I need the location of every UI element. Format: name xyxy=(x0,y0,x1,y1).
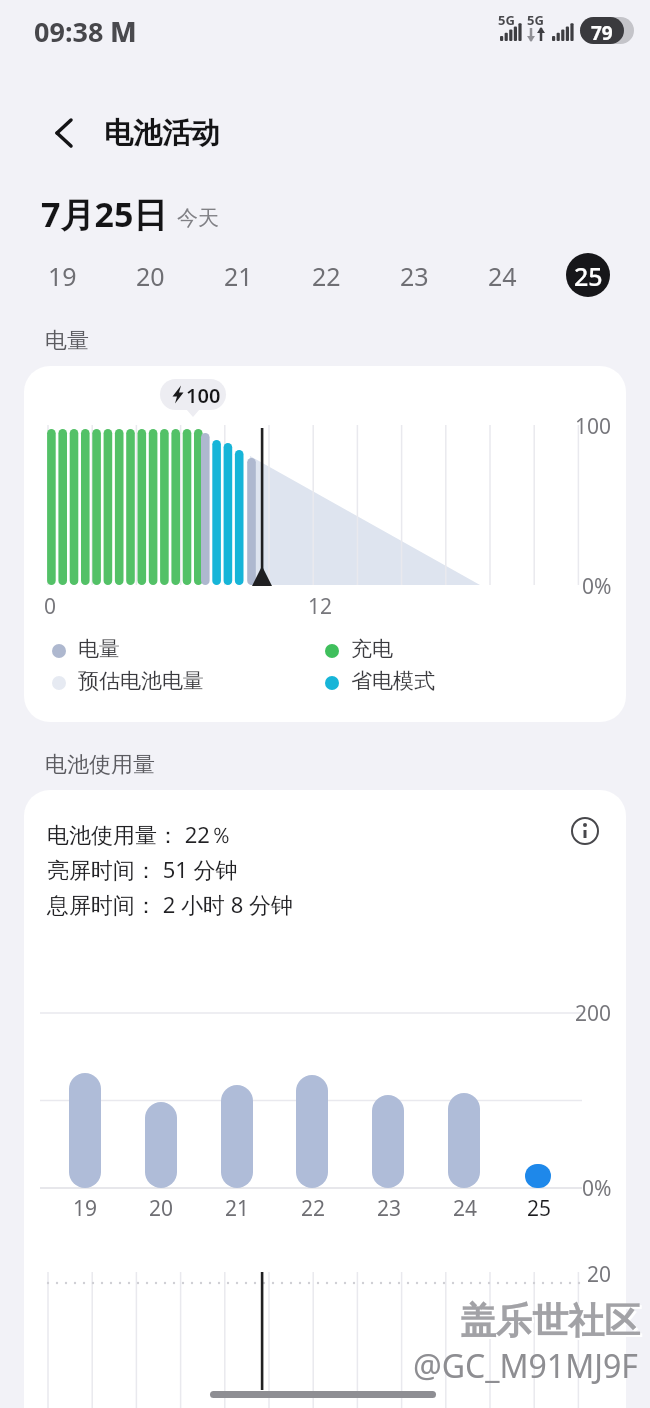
button[interactable] xyxy=(384,245,444,305)
button[interactable] xyxy=(208,245,268,305)
staticText: 电池使用量 xyxy=(45,751,155,779)
button[interactable] xyxy=(565,811,605,851)
staticText: 21 xyxy=(225,1194,250,1223)
staticText: 20 xyxy=(587,1260,612,1289)
staticText: 充电 xyxy=(351,636,393,662)
staticText: 12 xyxy=(308,592,333,621)
staticText: 亮屏时间： 51 分钟 xyxy=(47,854,238,884)
staticText: 息屏时间： 2 小时 8 分钟 xyxy=(47,889,294,919)
staticText: 5G xyxy=(498,11,515,29)
button[interactable] xyxy=(24,790,626,1408)
staticText: 预估电池电量 xyxy=(78,668,204,694)
staticText: 25 xyxy=(574,259,603,293)
staticText: 24 xyxy=(453,1194,478,1223)
button[interactable] xyxy=(24,366,626,722)
staticText: 25 xyxy=(527,1194,552,1223)
staticText: 22 xyxy=(301,1194,326,1223)
staticText: 79 xyxy=(591,20,613,46)
staticText: 23 xyxy=(400,259,429,293)
staticText: 5G xyxy=(527,11,544,29)
staticText: 电量 xyxy=(45,327,89,355)
staticText: 0 xyxy=(44,592,57,621)
staticText: 100 xyxy=(575,412,612,441)
staticText: 23 xyxy=(377,1194,402,1223)
staticText: 今天 xyxy=(177,205,219,231)
staticText: 盖乐世社区 xyxy=(462,1300,642,1345)
button[interactable] xyxy=(40,108,88,156)
staticText: 20 xyxy=(149,1194,174,1223)
button[interactable] xyxy=(472,245,532,305)
staticText: 22 xyxy=(312,259,341,293)
staticText: 200 xyxy=(575,999,612,1028)
staticText: 7月25日 xyxy=(41,191,168,237)
staticText: 19 xyxy=(73,1194,98,1223)
staticText: 电池使用量： 22％ xyxy=(47,819,232,849)
button[interactable] xyxy=(120,245,180,305)
staticText: 0% xyxy=(582,572,612,601)
button[interactable] xyxy=(32,245,92,305)
staticText: 20 xyxy=(136,259,165,293)
button[interactable] xyxy=(296,245,356,305)
staticText: 19 xyxy=(48,259,77,293)
staticText: 09:38 xyxy=(34,13,104,50)
staticText: 电量 xyxy=(78,636,120,662)
staticText: 24 xyxy=(488,259,517,293)
staticText: 省电模式 xyxy=(351,668,435,694)
staticText: 0% xyxy=(582,1174,612,1203)
staticText: 盖乐世社区 xyxy=(460,1298,640,1343)
staticText: 100 xyxy=(186,382,221,409)
staticText: 电池活动 xyxy=(104,115,220,152)
staticText: M xyxy=(110,12,137,50)
staticText: @GC_M91MJ9F xyxy=(413,1344,638,1388)
button[interactable] xyxy=(560,245,620,305)
staticText: 21 xyxy=(224,259,253,293)
